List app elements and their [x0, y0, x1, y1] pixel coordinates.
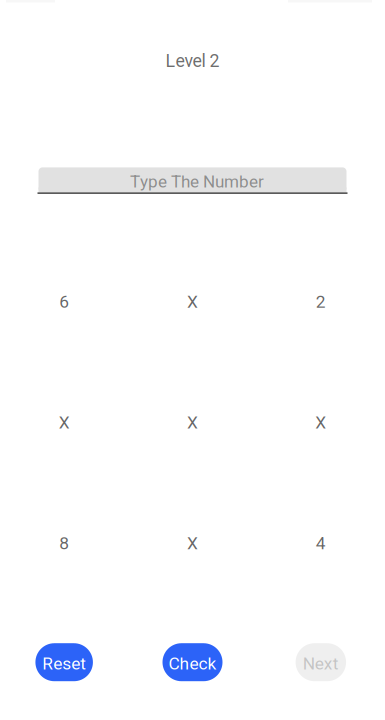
- staticText: X: [187, 533, 198, 553]
- staticText: 2: [316, 292, 326, 312]
- staticText: X: [187, 292, 198, 312]
- staticText: 6: [59, 292, 69, 312]
- button[interactable]: Next: [296, 643, 346, 681]
- staticText: X: [187, 412, 198, 433]
- staticText: Level 2: [165, 50, 219, 71]
- staticText: Reset: [42, 653, 86, 674]
- staticText: Type The Number: [130, 172, 264, 192]
- staticText: 8: [59, 533, 69, 553]
- button[interactable]: Check: [162, 643, 222, 681]
- staticText: 4: [316, 533, 326, 553]
- staticText: Next: [303, 653, 339, 674]
- staticText: X: [59, 412, 70, 433]
- staticText: X: [315, 412, 326, 433]
- button[interactable]: Reset: [35, 643, 93, 681]
- button[interactable]: Type The Number: [37, 167, 347, 194]
- staticText: Check: [168, 653, 216, 674]
